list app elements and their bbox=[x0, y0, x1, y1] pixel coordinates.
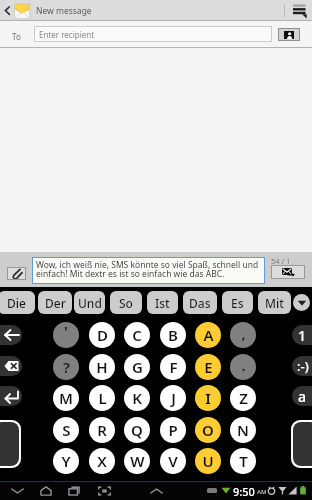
staticText: D bbox=[97, 325, 108, 345]
button[interactable]: Q bbox=[124, 417, 150, 443]
button[interactable]: Y bbox=[53, 448, 79, 474]
button[interactable]: More options bbox=[285, 0, 312, 21]
button[interactable]: O bbox=[195, 417, 221, 443]
staticText: O bbox=[202, 420, 214, 440]
button[interactable]: Das bbox=[183, 291, 217, 314]
button[interactable]: Shift bbox=[0, 422, 19, 466]
staticText: A bbox=[203, 325, 214, 345]
button[interactable]: Notifications bbox=[146, 484, 166, 497]
button[interactable]: Hide keyboard bbox=[7, 484, 27, 497]
button[interactable]: Emoji bbox=[292, 356, 312, 376]
staticText: Es bbox=[231, 295, 244, 311]
button[interactable]: G bbox=[124, 354, 150, 380]
button[interactable]: Und bbox=[74, 291, 105, 314]
staticText: J bbox=[171, 388, 176, 408]
staticText: I bbox=[205, 388, 211, 408]
staticText: X bbox=[97, 451, 107, 471]
button[interactable]: Space bbox=[293, 422, 312, 466]
staticText: C bbox=[132, 325, 142, 345]
button[interactable]: More suggestions bbox=[293, 294, 310, 311]
button[interactable]: Choose contact bbox=[278, 28, 300, 41]
staticText: P bbox=[168, 420, 178, 440]
button[interactable]: M bbox=[53, 385, 79, 411]
staticText: , bbox=[241, 323, 246, 343]
button[interactable]: K bbox=[124, 385, 150, 411]
button[interactable]: J bbox=[160, 385, 186, 411]
button[interactable]: B bbox=[160, 322, 186, 348]
staticText: M bbox=[59, 388, 73, 408]
staticText: V bbox=[168, 451, 178, 471]
button[interactable]: Attach bbox=[7, 267, 26, 280]
staticText: a bbox=[298, 387, 307, 406]
button[interactable]: Backspace bbox=[0, 356, 22, 376]
staticText: So bbox=[119, 295, 133, 311]
staticText: Und bbox=[78, 295, 102, 311]
staticText: Mit bbox=[265, 295, 284, 311]
button[interactable]: Numbers bbox=[292, 325, 312, 345]
button[interactable]: Lower case bbox=[292, 386, 312, 406]
button[interactable]: ? bbox=[53, 354, 79, 380]
staticText: Z bbox=[239, 388, 248, 408]
staticText: S bbox=[62, 420, 71, 440]
staticText: . bbox=[241, 355, 246, 375]
staticText: Y bbox=[61, 451, 71, 471]
button[interactable]: D bbox=[89, 322, 115, 348]
button[interactable]: Switch keyboard bbox=[94, 484, 114, 497]
staticText: U bbox=[202, 451, 214, 471]
staticText: R bbox=[97, 420, 107, 440]
button[interactable]: . bbox=[230, 354, 256, 380]
button[interactable]: Back bbox=[0, 0, 36, 21]
staticText: 1 bbox=[298, 326, 307, 345]
staticText: AM bbox=[257, 488, 267, 496]
button[interactable]: L bbox=[89, 385, 115, 411]
staticText: K bbox=[132, 388, 142, 408]
button[interactable]: Ist bbox=[147, 291, 178, 314]
button[interactable]: S bbox=[53, 417, 79, 443]
staticText: Wow, ich weiß nie, SMS könnte so viel Sp… bbox=[36, 259, 259, 280]
staticText: T bbox=[239, 451, 248, 471]
button[interactable]: Mit bbox=[258, 291, 291, 314]
button[interactable]: Recent apps bbox=[64, 484, 84, 497]
button[interactable]: Z bbox=[230, 385, 256, 411]
button[interactable]: R bbox=[89, 417, 115, 443]
staticText: Ist bbox=[155, 295, 170, 311]
button[interactable]: Wow, ich weiß nie, SMS könnte so viel Sp… bbox=[32, 257, 265, 284]
button[interactable]: N bbox=[230, 417, 256, 443]
button[interactable]: Home bbox=[36, 484, 56, 497]
button[interactable]: E bbox=[195, 354, 221, 380]
staticText: B bbox=[168, 325, 178, 345]
staticText: G bbox=[132, 357, 143, 377]
button[interactable]: U bbox=[195, 448, 221, 474]
staticText: 9:50 bbox=[233, 484, 255, 499]
button[interactable]: H bbox=[89, 354, 115, 380]
button[interactable]: A bbox=[195, 322, 221, 348]
staticText: Q bbox=[131, 420, 143, 440]
button[interactable]: C bbox=[124, 322, 150, 348]
button[interactable]: So bbox=[110, 291, 142, 314]
staticText: E bbox=[204, 357, 213, 377]
button[interactable]: Send message bbox=[271, 265, 305, 279]
button[interactable]: T bbox=[230, 448, 256, 474]
staticText: New message bbox=[36, 5, 92, 17]
button[interactable]: Enter recipient bbox=[34, 26, 272, 42]
button[interactable]: P bbox=[160, 417, 186, 443]
button[interactable]: Es bbox=[222, 291, 253, 314]
staticText: 54 / 1 bbox=[271, 256, 291, 266]
button[interactable]: Die bbox=[0, 291, 35, 314]
button[interactable]: Enter bbox=[0, 386, 22, 406]
button[interactable]: X bbox=[89, 448, 115, 474]
staticText: ' bbox=[64, 322, 68, 341]
button[interactable]: , bbox=[230, 322, 256, 348]
staticText: W bbox=[130, 451, 145, 471]
button[interactable]: V bbox=[160, 448, 186, 474]
button[interactable]: W bbox=[124, 448, 150, 474]
button[interactable]: F bbox=[160, 354, 186, 380]
button[interactable]: ' bbox=[53, 322, 79, 348]
staticText: Die bbox=[7, 295, 26, 311]
staticText: N bbox=[237, 420, 249, 440]
staticText: To bbox=[12, 31, 21, 42]
button[interactable]: I bbox=[195, 385, 221, 411]
staticText: F bbox=[169, 357, 178, 377]
button[interactable]: Previous bbox=[0, 325, 22, 345]
button[interactable]: Der bbox=[38, 291, 72, 314]
